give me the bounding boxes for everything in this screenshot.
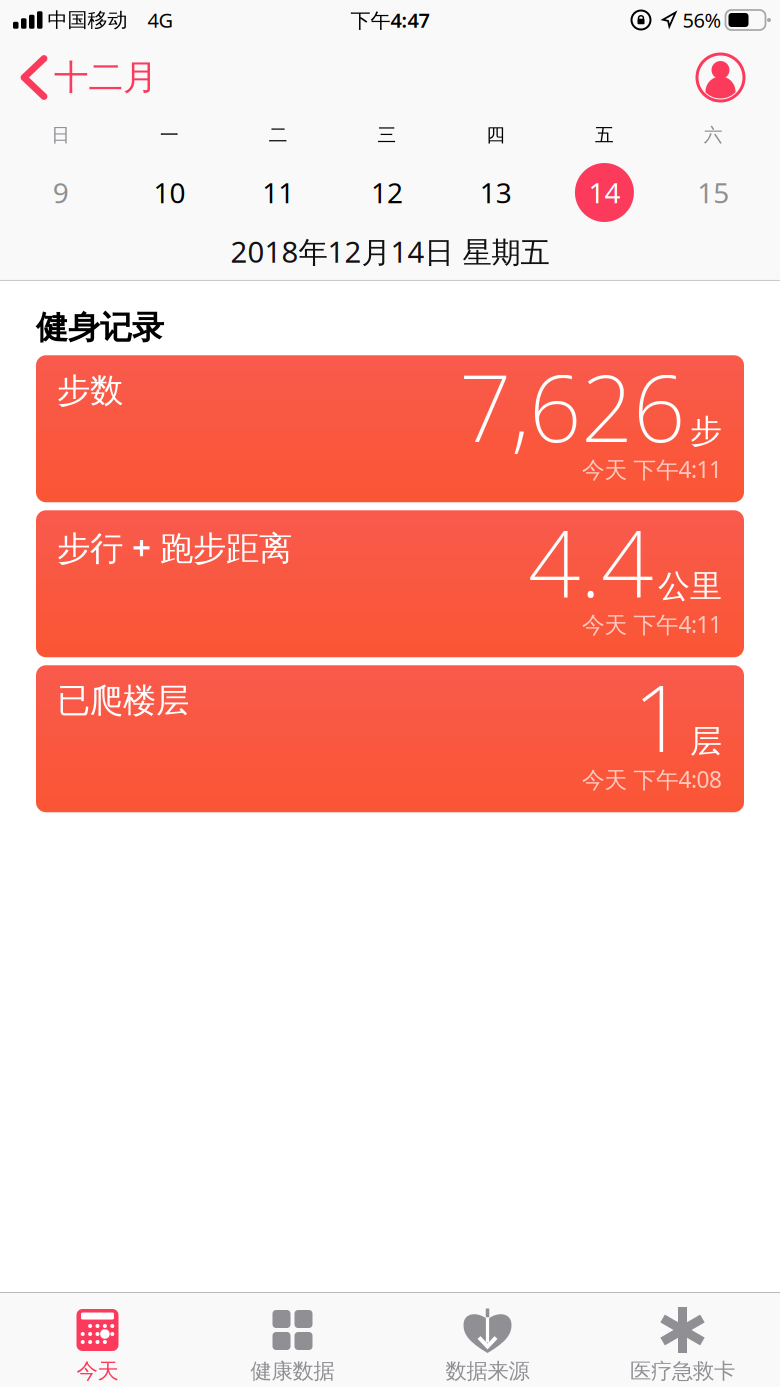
button[interactable]: 14 <box>550 163 659 222</box>
button[interactable]: 11 <box>224 174 333 211</box>
staticText: 12 <box>371 174 403 211</box>
staticText: 15 <box>697 174 729 211</box>
staticText: 六 <box>704 123 723 146</box>
staticText: 1 <box>633 655 685 777</box>
staticText: 9 <box>53 174 69 211</box>
staticText: 健康数据 <box>250 1358 334 1384</box>
staticText: 13 <box>480 174 512 211</box>
staticText: 公里 <box>658 567 722 606</box>
staticText: 2018年12月14日 星期五 <box>230 232 549 271</box>
staticText: 已爬楼层 <box>57 680 189 721</box>
staticText: 7,626 <box>459 345 685 467</box>
button[interactable]: 返回 <box>24 56 158 99</box>
staticText: 二 <box>269 123 288 146</box>
staticText: 五 <box>595 123 614 146</box>
staticText: 医疗急救卡 <box>630 1358 735 1384</box>
staticText: 一 <box>160 123 179 146</box>
staticText: 14 <box>588 174 620 211</box>
button[interactable]: 步数 <box>36 355 744 502</box>
staticText: 今天 <box>76 1358 118 1384</box>
staticText: 今天 下午4:11 <box>582 454 722 484</box>
staticText: 步数 <box>57 370 123 411</box>
button[interactable]: 医疗急救卡 <box>585 1308 780 1384</box>
staticText: 步 <box>690 412 722 451</box>
staticText: 10 <box>154 174 186 211</box>
staticText: 今天 下午4:08 <box>582 764 722 794</box>
staticText: 健身记录 <box>36 308 164 347</box>
staticText: 日 <box>51 123 70 146</box>
staticText: 11 <box>262 174 294 211</box>
staticText: 今天 下午4:11 <box>582 609 722 639</box>
button[interactable]: 个人资料 <box>697 54 744 101</box>
staticText: 三 <box>377 123 396 146</box>
staticText: 步行 + 跑步距离 <box>57 525 292 570</box>
staticText: 4.4 <box>528 500 653 622</box>
button[interactable]: 10 <box>115 174 224 211</box>
button[interactable]: 9 <box>6 174 115 211</box>
staticText: 中国移动 <box>47 8 127 32</box>
button[interactable]: 13 <box>441 174 550 211</box>
staticText: 四 <box>486 123 505 146</box>
staticText: 56% <box>682 7 721 33</box>
button[interactable]: 健康数据 <box>195 1308 390 1384</box>
button[interactable]: 已爬楼层 <box>36 665 744 812</box>
staticText: 数据来源 <box>445 1358 529 1384</box>
button[interactable]: 15 <box>659 174 767 211</box>
button[interactable]: 步行 + 跑步距离 <box>36 510 744 657</box>
button[interactable]: 数据来源 <box>390 1308 585 1384</box>
staticText: 4G <box>147 7 173 33</box>
staticText: 十二月 <box>54 56 158 99</box>
button[interactable]: 12 <box>333 174 441 211</box>
button[interactable]: 今天 <box>0 1308 195 1384</box>
staticText: 下午4:47 <box>350 7 429 33</box>
staticText: 层 <box>690 722 722 761</box>
